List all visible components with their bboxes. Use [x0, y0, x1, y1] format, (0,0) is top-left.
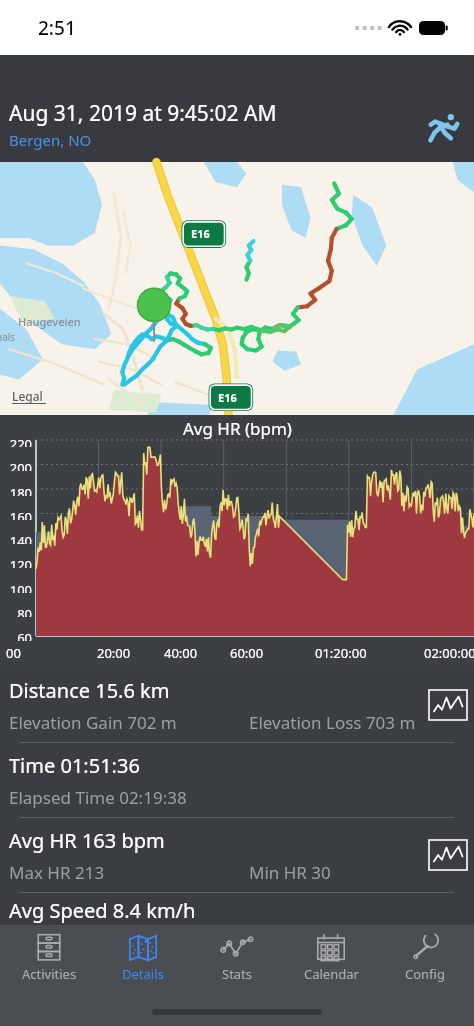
staticText: Activities: [22, 965, 77, 983]
staticText: hals: [0, 330, 16, 344]
button[interactable]: 220: [0, 415, 474, 668]
staticText: 100: [0, 581, 32, 593]
button[interactable]: Aug 31, 2019 at 9:45:02 AM: [0, 55, 474, 162]
staticText: Max HR 213: [9, 861, 105, 884]
button[interactable]: Haugeveien: [0, 162, 474, 415]
staticText: Avg HR 163 bpm: [9, 827, 165, 854]
button[interactable]: Distance 15.6 km: [0, 668, 474, 742]
staticText: 00: [6, 644, 21, 662]
staticText: 200: [0, 459, 32, 471]
staticText: 2:51: [38, 15, 76, 41]
button[interactable]: Stats: [192, 931, 282, 983]
staticText: 02:00:00: [424, 644, 474, 662]
staticText: 160: [0, 508, 32, 520]
staticText: 01:20:00: [315, 644, 367, 662]
staticText: 40:00: [164, 644, 198, 662]
other: Running activity: [424, 110, 460, 146]
staticText: Bergen, NO: [9, 130, 92, 150]
staticText: Avg Speed 8.4 km/h: [9, 897, 196, 924]
button[interactable]: Config: [380, 931, 470, 983]
staticText: E16: [191, 226, 210, 241]
button[interactable]: Activities: [4, 931, 94, 983]
staticText: Min HR 30: [249, 861, 331, 884]
staticText: 60:00: [230, 644, 264, 662]
button[interactable]: Details: [98, 931, 188, 983]
staticText: 60: [0, 629, 32, 641]
staticText: 140: [0, 532, 32, 544]
staticText: Elevation Loss 703 m: [249, 711, 416, 734]
button[interactable]: Show graph: [428, 838, 468, 872]
button[interactable]: Time 01:51:36: [0, 743, 474, 817]
staticText: 120: [0, 556, 32, 568]
staticText: Avg HR (bpm): [183, 417, 292, 440]
staticText: 180: [0, 484, 32, 496]
staticText: Haugeveien: [18, 314, 81, 329]
staticText: Elevation Gain 702 m: [9, 711, 177, 734]
staticText: Stats: [222, 965, 253, 983]
button[interactable]: Legal: [12, 388, 43, 404]
staticText: E16: [218, 390, 237, 405]
staticText: Calendar: [304, 965, 359, 983]
button[interactable]: Show graph: [428, 688, 468, 722]
staticText: Distance 15.6 km: [9, 677, 170, 704]
staticText: Config: [405, 965, 445, 983]
button[interactable]: Calendar: [286, 931, 376, 983]
staticText: 20:00: [97, 644, 131, 662]
button[interactable]: Avg HR 163 bpm: [0, 818, 474, 892]
button[interactable]: Avg Speed 8.4 km/h: [0, 893, 474, 925]
staticText: Elapsed Time 02:19:38: [9, 786, 187, 809]
staticText: Aug 31, 2019 at 9:45:02 AM: [9, 99, 277, 128]
staticText: 220: [0, 435, 32, 447]
staticText: Details: [122, 965, 164, 983]
staticText: 80: [0, 605, 32, 617]
staticText: Time 01:51:36: [9, 752, 140, 779]
